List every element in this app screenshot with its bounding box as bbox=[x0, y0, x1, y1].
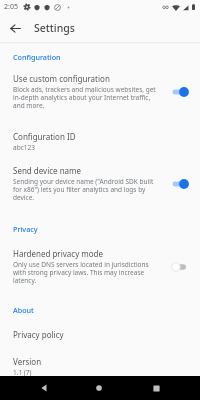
button[interactable]: Home bbox=[87, 376, 111, 400]
staticText: Use custom configuration bbox=[13, 73, 110, 84]
staticText: 2:05 bbox=[4, 2, 18, 12]
button[interactable]: Version bbox=[0, 356, 200, 376]
staticText: About bbox=[13, 305, 34, 315]
staticText: Send device name bbox=[13, 165, 82, 176]
button[interactable]: Toggle on bbox=[168, 174, 192, 194]
button[interactable]: Recent apps bbox=[144, 376, 168, 400]
button[interactable]: Hardened privacy mode bbox=[0, 248, 200, 285]
button[interactable]: Back bbox=[0, 14, 30, 42]
staticText: Configuration bbox=[13, 52, 61, 62]
button[interactable]: Send device name bbox=[0, 165, 200, 202]
staticText: Privacy bbox=[13, 224, 38, 234]
staticText: Only use DNS servers located in jurisdic… bbox=[13, 260, 160, 285]
staticText: Block ads, trackers and malicious websit… bbox=[13, 85, 160, 110]
staticText: abc123 bbox=[13, 143, 35, 152]
staticText: Settings bbox=[34, 21, 75, 35]
button[interactable]: Back bbox=[32, 376, 56, 400]
button[interactable]: Use custom configuration bbox=[0, 73, 200, 110]
staticText: Configuration ID bbox=[13, 131, 76, 142]
staticText: Privacy policy bbox=[13, 329, 64, 340]
button[interactable]: Privacy policy bbox=[0, 329, 200, 340]
staticText: Hardened privacy mode bbox=[13, 248, 104, 259]
staticText: 1.1 (7) bbox=[13, 368, 32, 376]
button[interactable]: Configuration ID bbox=[0, 131, 200, 152]
button[interactable]: Toggle off bbox=[168, 257, 192, 277]
staticText: Sending your device name ("Android SDK b… bbox=[13, 177, 160, 202]
staticText: Version bbox=[13, 356, 42, 367]
button[interactable]: Toggle on bbox=[168, 82, 192, 102]
